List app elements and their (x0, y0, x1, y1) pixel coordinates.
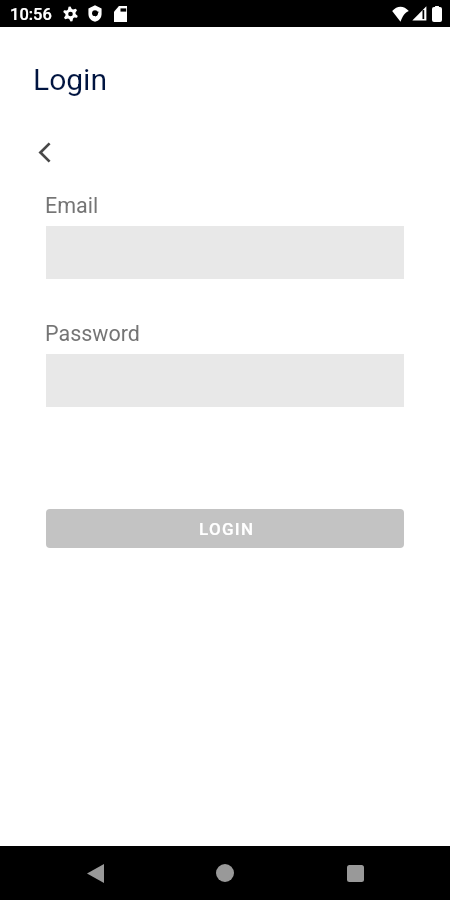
button[interactable]: Back (28, 135, 62, 169)
button[interactable]: Home (192, 852, 258, 894)
button[interactable]: Recent apps (322, 852, 388, 894)
staticText: Email (45, 193, 99, 218)
button[interactable]: LOGIN (46, 509, 404, 548)
staticText: LOGIN (199, 519, 255, 539)
button[interactable]: Back (62, 852, 128, 894)
staticText: 10:56 (10, 5, 52, 24)
staticText: Password (45, 321, 140, 346)
staticText: Login (33, 62, 107, 97)
